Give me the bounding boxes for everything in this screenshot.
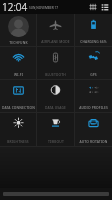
- button[interactable]: GPS: [75, 47, 112, 79]
- button[interactable]: TECHFUNK: [0, 14, 36, 46]
- staticText: WI-FI: [14, 72, 23, 76]
- staticText: BRIGHTNESS: [7, 139, 29, 143]
- button[interactable]: TIMEOUT: [37, 113, 74, 146]
- button[interactable]: BRIGHTNESS: [0, 113, 36, 146]
- staticText: GPS: [90, 72, 97, 76]
- button[interactable]: DATA USAGE: [37, 80, 74, 112]
- button[interactable]: AIRPLANE MODE: [37, 14, 74, 46]
- button[interactable]: Notifications: [101, 3, 109, 11]
- staticText: SUN,NOVEMBER 17: [29, 6, 59, 10]
- button[interactable]: BLUETOOTH: [37, 47, 74, 79]
- staticText: DATA CONNECTION: [2, 105, 35, 109]
- button[interactable]: AUTO ROTATION: [75, 113, 112, 146]
- staticText: BLUETOOTH: [45, 72, 66, 76]
- staticText: AUTO ROTATION: [79, 139, 108, 143]
- staticText: TIMEOUT: [48, 139, 64, 143]
- staticText: 12:04: [2, 0, 28, 14]
- button[interactable]: AUDIO PROFILES: [75, 80, 112, 112]
- button[interactable]: WI-FI: [0, 47, 36, 79]
- button[interactable]: CHARGING 66%: [75, 14, 112, 46]
- staticText: TECHFUNK: [9, 40, 28, 44]
- staticText: CHARGING 66%: [80, 39, 107, 43]
- button[interactable]: Quick settings: [89, 3, 97, 11]
- staticText: AIRPLANE MODE: [41, 39, 70, 43]
- button[interactable]: DATA CONNECTION: [0, 80, 36, 112]
- button[interactable]: Close quick settings: [0, 188, 112, 200]
- staticText: DATA USAGE: [45, 105, 66, 109]
- staticText: AUDIO PROFILES: [79, 105, 108, 109]
